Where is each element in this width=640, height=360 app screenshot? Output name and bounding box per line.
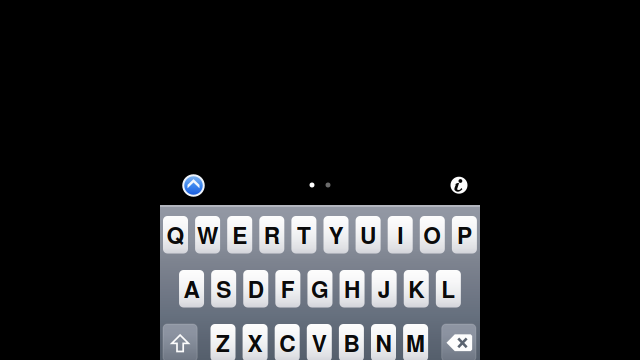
staticText: R (264, 218, 280, 251)
staticText: Z (216, 326, 230, 359)
button[interactable]: X (243, 324, 268, 360)
staticText: H (344, 272, 360, 305)
staticText: Q (166, 218, 184, 251)
button[interactable]: B (339, 324, 364, 360)
button[interactable]: O (420, 216, 445, 253)
button[interactable]: Shift (163, 324, 197, 360)
button[interactable]: G (307, 270, 332, 307)
staticText: O (423, 218, 441, 251)
button[interactable]: Info (444, 170, 474, 200)
staticText: P (457, 218, 472, 251)
button[interactable]: F (275, 270, 300, 307)
staticText: C (279, 326, 295, 359)
staticText: F (281, 272, 295, 305)
button[interactable]: Previous field (177, 169, 209, 201)
staticText: L (441, 272, 455, 305)
staticText: Y (328, 218, 343, 251)
staticText: S (216, 272, 231, 305)
button[interactable]: Q (163, 216, 188, 253)
button[interactable]: Y (323, 216, 348, 253)
staticText: J (378, 272, 391, 305)
staticText: E (232, 218, 247, 251)
button[interactable]: Delete (442, 324, 476, 360)
staticText: T (297, 218, 311, 251)
staticText: G (311, 272, 329, 305)
button[interactable]: K (404, 270, 429, 307)
button[interactable]: Z (210, 324, 235, 360)
staticText: U (360, 218, 376, 251)
button[interactable]: I (388, 216, 413, 253)
button[interactable]: C (275, 324, 300, 360)
staticText: W (197, 218, 218, 251)
button[interactable]: M (403, 324, 428, 360)
staticText: V (312, 326, 327, 359)
button[interactable]: W (195, 216, 220, 253)
staticText: D (248, 272, 264, 305)
button[interactable]: T (291, 216, 316, 253)
staticText: M (406, 326, 425, 359)
button[interactable]: R (259, 216, 284, 253)
staticText: A (184, 272, 200, 305)
button[interactable]: A (179, 270, 204, 307)
button[interactable]: V (307, 324, 332, 360)
staticText: K (408, 272, 424, 305)
staticText: I (397, 218, 403, 251)
staticText: B (343, 326, 359, 359)
staticText: N (375, 326, 391, 359)
button[interactable]: U (356, 216, 381, 253)
button[interactable]: J (372, 270, 397, 307)
button[interactable]: L (436, 270, 461, 307)
button[interactable]: D (243, 270, 268, 307)
button[interactable]: S (211, 270, 236, 307)
button[interactable]: E (227, 216, 252, 253)
staticText: X (248, 326, 263, 359)
button[interactable]: N (371, 324, 396, 360)
button[interactable]: P (452, 216, 477, 253)
button[interactable]: H (340, 270, 365, 307)
